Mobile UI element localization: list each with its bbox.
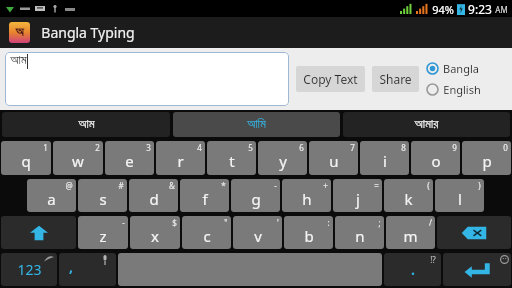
button[interactable]: b <box>284 216 333 249</box>
button[interactable]: , <box>59 253 116 286</box>
staticText: e <box>125 151 134 171</box>
staticText: 0 <box>503 142 508 153</box>
button[interactable]: আমার <box>343 112 510 137</box>
button[interactable]: Share <box>372 66 419 92</box>
staticText: 123 <box>17 260 42 279</box>
staticText: Copy Text <box>303 71 358 87</box>
button[interactable]: g <box>231 179 280 212</box>
button[interactable]: s <box>78 179 127 212</box>
staticText: m <box>403 226 418 246</box>
button[interactable]: j <box>333 179 382 212</box>
button[interactable]: w <box>53 141 103 175</box>
staticText: h <box>302 189 312 209</box>
staticText: : <box>327 217 330 228</box>
button[interactable]: p <box>462 141 511 175</box>
staticText: g <box>251 189 261 209</box>
staticText: s <box>99 189 107 209</box>
staticText: $ <box>172 217 177 228</box>
button[interactable]: Copy Text <box>296 66 365 92</box>
button[interactable]: z <box>78 216 128 249</box>
staticText: n <box>355 226 365 246</box>
staticText: - <box>274 180 277 191</box>
staticText: !? <box>430 254 436 265</box>
button[interactable]: Delete <box>437 216 511 249</box>
button[interactable]: f <box>180 179 229 212</box>
staticText: 8 <box>401 142 406 153</box>
staticText: + <box>323 180 328 191</box>
staticText: ) <box>478 180 481 191</box>
staticText: l <box>458 189 462 209</box>
button[interactable]: k <box>384 179 433 212</box>
button[interactable]: আম <box>2 112 170 137</box>
staticText: 1 <box>43 142 48 153</box>
staticText: / <box>429 217 432 228</box>
button[interactable]: l <box>435 179 484 212</box>
staticText: , <box>69 257 73 276</box>
button[interactable]: আম <box>5 52 289 106</box>
button[interactable]: a <box>27 179 76 212</box>
staticText: z <box>99 226 107 246</box>
staticText: y <box>279 151 287 171</box>
staticText: d <box>149 189 159 209</box>
staticText: q <box>21 151 31 171</box>
button[interactable]: t <box>207 141 256 175</box>
staticText: ( <box>427 180 430 191</box>
staticText: আম <box>78 118 95 131</box>
staticText: . <box>411 260 415 279</box>
staticText: Share <box>379 71 412 87</box>
staticText: w <box>72 151 84 171</box>
staticText: t <box>229 151 235 171</box>
staticText: 3 <box>146 142 151 153</box>
staticText: আমার <box>414 118 439 131</box>
staticText: অ <box>15 26 24 39</box>
button[interactable]: r <box>156 141 205 175</box>
staticText: 7 <box>350 142 355 153</box>
staticText: & <box>169 180 175 191</box>
staticText: i <box>383 151 387 171</box>
staticText: 2 <box>95 142 100 153</box>
staticText: u <box>329 151 339 171</box>
staticText: 5 <box>248 142 253 153</box>
staticText: # <box>118 180 124 191</box>
staticText: c <box>203 226 211 246</box>
staticText: 9 <box>452 142 457 153</box>
staticText: j <box>356 189 360 209</box>
staticText: k <box>404 189 413 209</box>
button[interactable]: e <box>105 141 154 175</box>
staticText: = <box>374 180 379 191</box>
staticText: আম <box>10 54 27 67</box>
staticText: ' <box>277 217 279 228</box>
button[interactable]: h <box>282 179 331 212</box>
button[interactable]: আমি <box>173 112 340 137</box>
button[interactable]: q <box>1 141 51 175</box>
staticText: English <box>443 82 481 97</box>
staticText: 94% <box>432 2 454 17</box>
button[interactable]: n <box>335 216 384 249</box>
staticText: r <box>177 151 184 171</box>
button[interactable]: y <box>258 141 307 175</box>
staticText: a <box>47 189 56 209</box>
button[interactable]: m <box>386 216 435 249</box>
button[interactable]: English <box>426 82 483 97</box>
button[interactable]: 123 <box>1 253 57 286</box>
staticText: 4 <box>197 142 202 153</box>
button[interactable]: x <box>130 216 180 249</box>
button[interactable]: . <box>384 253 441 286</box>
staticText: ; <box>378 217 381 228</box>
button[interactable]: Shift <box>1 216 76 249</box>
staticText: f <box>202 189 208 209</box>
staticText: AM <box>495 4 508 15</box>
button[interactable]: i <box>360 141 409 175</box>
button[interactable]: d <box>129 179 178 212</box>
staticText: v <box>254 226 262 246</box>
button[interactable]: o <box>411 141 460 175</box>
staticText: আমি <box>247 118 266 131</box>
button[interactable]: v <box>233 216 282 249</box>
button[interactable]: c <box>182 216 231 249</box>
staticText: 6 <box>299 142 304 153</box>
button[interactable]: u <box>309 141 358 175</box>
button[interactable]: Bangla <box>426 61 481 76</box>
staticText: Bangla <box>443 61 479 76</box>
button[interactable]: Enter <box>443 253 511 286</box>
